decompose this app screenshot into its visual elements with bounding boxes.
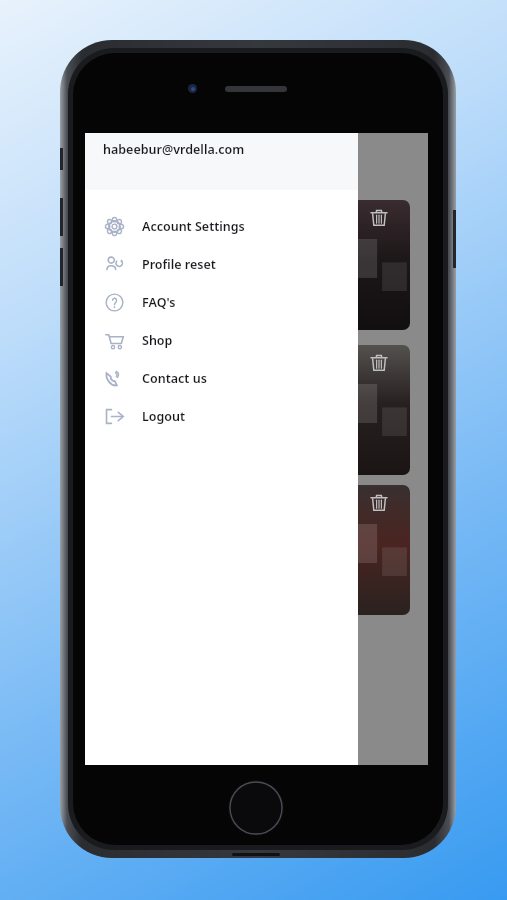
button[interactable]: FAQ's: [85, 283, 358, 321]
button[interactable]: Account Settings: [85, 207, 358, 245]
button[interactable]: Delete: [348, 345, 410, 475]
button[interactable]: Contact us: [85, 359, 358, 397]
button[interactable]: Delete: [348, 485, 410, 615]
staticText: Account Settings: [142, 218, 245, 235]
button[interactable]: Delete: [369, 353, 389, 373]
staticText: Logout: [142, 408, 186, 425]
staticText: habeebur@vrdella.com: [103, 141, 245, 158]
staticText: FAQ's: [142, 294, 176, 311]
staticText: Profile reset: [142, 256, 216, 273]
button[interactable]: habeebur@vrdella.com: [85, 133, 358, 190]
button[interactable]: Profile reset: [85, 245, 358, 283]
button[interactable]: Shop: [85, 321, 358, 359]
staticText: Contact us: [142, 370, 207, 387]
button[interactable]: Home: [228, 780, 284, 836]
button[interactable]: Delete: [348, 200, 410, 330]
button[interactable]: Logout: [85, 397, 358, 435]
staticText: Shop: [142, 332, 173, 349]
button[interactable]: Delete: [369, 493, 389, 513]
button[interactable]: Delete: [369, 208, 389, 228]
